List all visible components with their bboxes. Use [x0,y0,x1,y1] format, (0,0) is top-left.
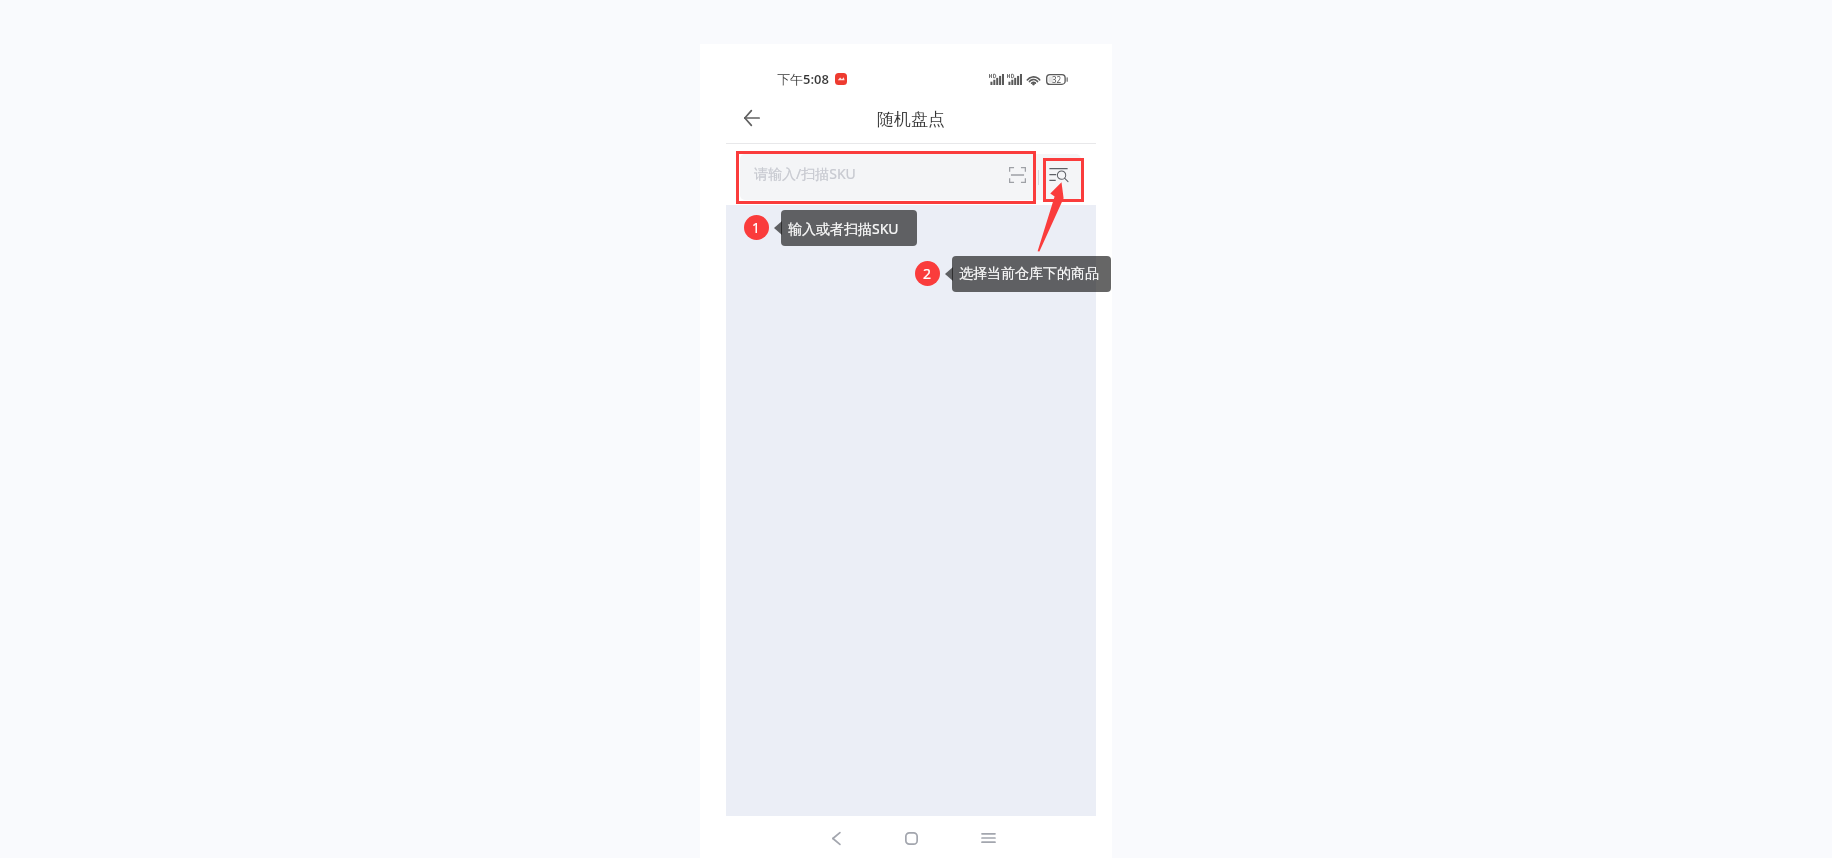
button[interactable]: Scan SKU [1004,154,1038,200]
button[interactable]: Back [726,92,778,144]
button[interactable]: Back [815,817,857,858]
staticText: 随机盘点 [877,109,945,130]
button[interactable]: Recent apps [967,817,1009,858]
staticText: 1 [752,218,761,237]
button[interactable]: Home [890,817,932,858]
button[interactable]: 请输入/扫描SKU [740,154,1004,200]
staticText: 选择当前仓库下的商品 [959,265,1099,283]
button[interactable]: Select product in current warehouse [1040,154,1081,200]
staticText: 2 [923,264,932,283]
staticText: 输入或者扫描SKU [788,219,899,238]
staticText: 请输入/扫描SKU [754,164,856,183]
staticText: 32 [1052,74,1062,85]
staticText: 下午5:08 [777,70,829,88]
